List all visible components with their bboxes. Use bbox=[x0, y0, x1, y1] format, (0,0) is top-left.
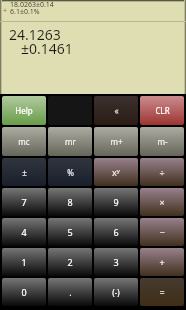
button[interactable]: = bbox=[140, 278, 184, 306]
staticText: 6.1±0.1% bbox=[10, 7, 40, 17]
button[interactable]: − bbox=[140, 218, 184, 246]
button[interactable]: × bbox=[140, 188, 184, 216]
button[interactable]: 9 bbox=[94, 188, 138, 216]
button[interactable]: CLR bbox=[140, 96, 184, 125]
staticText: 9 bbox=[113, 196, 119, 208]
staticText: + bbox=[3, 6, 8, 16]
staticText: 18.0263±0.14 bbox=[10, 0, 54, 10]
staticText: ±0.1461 bbox=[21, 39, 73, 58]
button[interactable]: % bbox=[48, 158, 92, 186]
button[interactable]: . bbox=[48, 278, 92, 306]
button[interactable]: x to the power y bbox=[94, 158, 138, 186]
button[interactable]: mr bbox=[48, 127, 92, 156]
button[interactable]: (-) bbox=[94, 278, 138, 306]
button[interactable]: 2 bbox=[48, 248, 92, 276]
button[interactable]: 5 bbox=[48, 218, 92, 246]
button[interactable]: m+ bbox=[94, 127, 138, 156]
staticText: « bbox=[114, 105, 119, 116]
staticText: m+ bbox=[110, 136, 123, 147]
staticText: . bbox=[69, 286, 72, 298]
staticText: + bbox=[159, 256, 165, 268]
staticText: 24.1263 bbox=[9, 25, 61, 44]
button[interactable]: 0 bbox=[2, 278, 46, 306]
button[interactable]: 7 bbox=[2, 188, 46, 216]
staticText: ÷ bbox=[159, 166, 165, 178]
button[interactable]: 1 bbox=[2, 248, 46, 276]
button[interactable]: Help bbox=[2, 96, 46, 125]
staticText: 3 bbox=[113, 256, 119, 268]
button[interactable]: ÷ bbox=[140, 158, 184, 186]
button[interactable]: ± bbox=[2, 158, 46, 186]
staticText: ± bbox=[22, 167, 27, 178]
staticText: Help bbox=[15, 105, 33, 116]
staticText: × bbox=[159, 196, 165, 208]
staticText: 2 bbox=[67, 256, 73, 268]
staticText: (-) bbox=[112, 287, 120, 298]
button[interactable]: m- bbox=[140, 127, 184, 156]
staticText: 7 bbox=[21, 196, 27, 208]
staticText: mc bbox=[18, 136, 30, 147]
staticText: CLR bbox=[155, 105, 170, 116]
button[interactable]: 4 bbox=[2, 218, 46, 246]
button[interactable]: 3 bbox=[94, 248, 138, 276]
staticText: = bbox=[159, 286, 165, 298]
button[interactable]: 8 bbox=[48, 188, 92, 216]
staticText: − bbox=[159, 226, 165, 238]
staticText: 1 bbox=[21, 256, 27, 268]
staticText: 8 bbox=[67, 196, 73, 208]
staticText: xy bbox=[112, 166, 120, 178]
button[interactable]: mc bbox=[2, 127, 46, 156]
staticText: 6 bbox=[113, 226, 119, 238]
staticText: 4 bbox=[21, 226, 27, 238]
staticText: m- bbox=[157, 136, 168, 147]
staticText: mr bbox=[65, 136, 76, 147]
staticText: % bbox=[67, 167, 74, 178]
staticText: 5 bbox=[67, 226, 73, 238]
button[interactable]: « bbox=[94, 96, 138, 125]
button[interactable]: + bbox=[140, 248, 184, 276]
button[interactable]: 6 bbox=[94, 218, 138, 246]
staticText: 0 bbox=[21, 286, 27, 298]
